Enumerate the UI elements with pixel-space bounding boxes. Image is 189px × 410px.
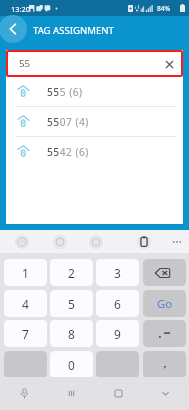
staticText: 4 bbox=[22, 296, 29, 312]
staticText: 1 bbox=[22, 265, 29, 281]
button[interactable]: 9 bbox=[96, 320, 139, 347]
staticText: 3 bbox=[114, 265, 121, 281]
staticText: 5507 (4) bbox=[47, 115, 89, 129]
staticText: 555 (6) bbox=[47, 85, 83, 99]
button[interactable]: 1 bbox=[4, 259, 47, 286]
button[interactable]: 3 bbox=[96, 259, 139, 286]
button[interactable]: Home bbox=[95, 377, 142, 410]
button[interactable]: 7 bbox=[4, 320, 47, 347]
staticText: 13:20 bbox=[11, 4, 30, 14]
button[interactable]: Hide keyboard bbox=[142, 377, 189, 410]
staticText: 84% bbox=[157, 4, 171, 13]
button[interactable]: Backspace bbox=[143, 259, 186, 286]
button[interactable]: GIF bbox=[85, 230, 107, 253]
button[interactable]: Go bbox=[143, 290, 186, 317]
button[interactable]: Clipboard bbox=[133, 230, 155, 253]
button[interactable]: Emoji bbox=[11, 230, 33, 253]
staticText: 9 bbox=[114, 326, 121, 342]
staticText: Go bbox=[157, 296, 173, 312]
staticText: 8 bbox=[68, 326, 75, 342]
button[interactable]: Clear search bbox=[161, 56, 177, 72]
button[interactable]: 5507 (4) bbox=[6, 107, 183, 137]
button[interactable]: 8 bbox=[50, 320, 93, 347]
button[interactable]: 55 bbox=[8, 52, 181, 75]
button[interactable]: 5 bbox=[50, 290, 93, 317]
button[interactable]: Blank key bbox=[4, 351, 47, 378]
button[interactable]: 6 bbox=[96, 290, 139, 317]
button[interactable]: Blank key bbox=[96, 351, 139, 378]
staticText: 6 bbox=[114, 296, 121, 312]
button[interactable]: 555 (6) bbox=[6, 77, 183, 107]
staticText: 0 bbox=[68, 357, 75, 373]
button[interactable]: More options bbox=[166, 230, 188, 253]
staticText: 55 bbox=[19, 57, 31, 70]
button[interactable]: 4 bbox=[4, 290, 47, 317]
staticText: 5542 (6) bbox=[47, 145, 89, 159]
button[interactable]: 0 bbox=[50, 351, 93, 378]
staticText: 2 bbox=[68, 265, 75, 281]
staticText: 5 bbox=[68, 296, 75, 312]
button[interactable]: Recent apps bbox=[48, 377, 95, 410]
button[interactable] bbox=[143, 320, 186, 347]
button[interactable]: 5542 (6) bbox=[6, 137, 183, 167]
staticText: TAG ASSIGNMENT bbox=[33, 24, 114, 37]
button[interactable]: Stickers bbox=[49, 230, 71, 253]
staticText: 7 bbox=[22, 326, 29, 342]
button[interactable]: Back bbox=[0, 15, 27, 43]
button[interactable]: 2 bbox=[50, 259, 93, 286]
button[interactable]: Voice input bbox=[0, 377, 48, 410]
button[interactable] bbox=[143, 351, 186, 378]
